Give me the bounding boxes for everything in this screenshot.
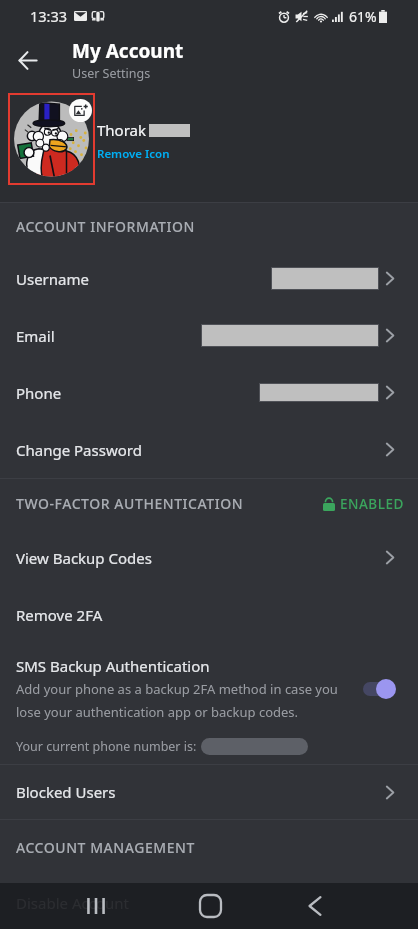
- button[interactable]: Blocked Users: [0, 765, 418, 819]
- button[interactable]: Remove Icon: [97, 146, 170, 162]
- staticText: View Backup Codes: [16, 548, 152, 568]
- staticText: ACCOUNT MANAGEMENT: [16, 838, 195, 857]
- button[interactable]: Email: [0, 307, 418, 364]
- button[interactable]: Phone: [0, 364, 418, 421]
- button[interactable]: SMS Backup Authentication: [0, 643, 418, 728]
- button[interactable]: Back: [7, 40, 47, 80]
- staticText: Disable Account: [16, 893, 129, 913]
- button[interactable]: Username: [0, 250, 418, 307]
- staticText: Blocked Users: [16, 782, 116, 802]
- staticText: 13:33: [30, 6, 68, 26]
- button[interactable]: Recent apps: [72, 883, 120, 929]
- staticText: 61%: [349, 7, 377, 26]
- button[interactable]: Home: [186, 883, 234, 929]
- staticText: Thorak: [97, 120, 147, 140]
- button[interactable]: Disable Account: [0, 876, 418, 929]
- staticText: Phone: [16, 383, 62, 403]
- staticText: My Account: [72, 38, 184, 64]
- staticText: ENABLED: [340, 495, 404, 513]
- button[interactable]: View Backup Codes: [0, 529, 418, 586]
- staticText: Email: [16, 326, 55, 346]
- staticText: Your current phone number is:: [16, 738, 197, 755]
- button[interactable]: Back: [291, 883, 339, 929]
- button[interactable]: Remove 2FA: [0, 586, 418, 643]
- staticText: TWO-FACTOR AUTHENTICATION: [16, 494, 244, 513]
- staticText: Change Password: [16, 440, 142, 460]
- staticText: Username: [16, 269, 89, 289]
- staticText: Add your phone as a backup 2FA method in…: [16, 680, 338, 721]
- staticText: Remove 2FA: [16, 605, 103, 625]
- staticText: User Settings: [72, 65, 151, 82]
- button[interactable]: Change Password: [0, 421, 418, 478]
- button[interactable]: Change avatar: [8, 93, 95, 185]
- staticText: SMS Backup Authentication: [16, 656, 210, 676]
- staticText: ACCOUNT INFORMATION: [16, 217, 195, 236]
